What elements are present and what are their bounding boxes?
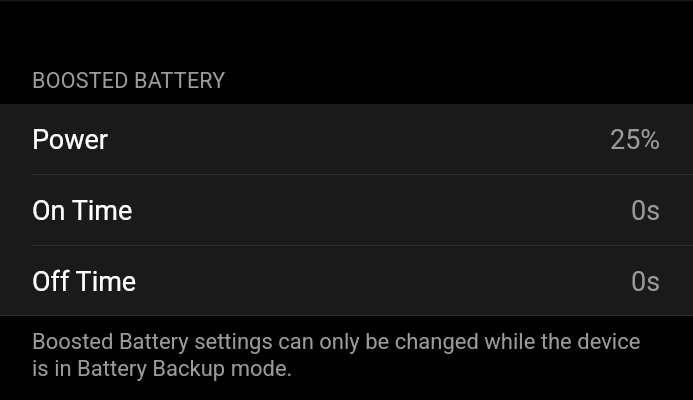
button[interactable]: Off Time	[0, 246, 693, 315]
button[interactable]: On Time	[0, 175, 693, 246]
staticText: 0s	[631, 266, 661, 298]
staticText: 25%	[610, 124, 661, 156]
staticText: Power	[32, 124, 109, 156]
staticText: Boosted Battery settings can only be cha…	[32, 329, 657, 381]
staticText: 0s	[631, 195, 661, 227]
staticText: Off Time	[32, 266, 137, 298]
staticText: On Time	[32, 195, 133, 227]
button[interactable]: Power	[0, 104, 693, 175]
staticText: BOOSTED BATTERY	[32, 68, 226, 93]
